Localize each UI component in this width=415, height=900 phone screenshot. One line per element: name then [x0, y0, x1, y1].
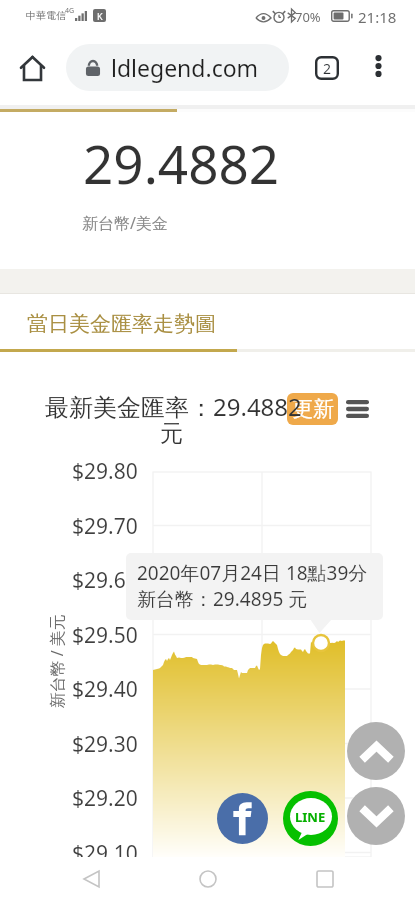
button[interactable]: Scroll to bottom: [347, 787, 405, 845]
staticText: ldlegend.com: [111, 52, 259, 83]
button[interactable]: ldlegend.com: [66, 44, 289, 91]
staticText: $29.80: [72, 457, 138, 486]
staticText: 元: [160, 419, 183, 448]
staticText: $29.60: [72, 566, 138, 595]
staticText: $29.70: [72, 512, 138, 541]
button[interactable]: Share on Facebook: [217, 793, 268, 844]
staticText: 更新: [292, 396, 334, 422]
staticText: 當日美金匯率走勢圖: [27, 311, 216, 337]
button[interactable]: More options: [358, 46, 398, 86]
staticText: $29.20: [72, 784, 138, 813]
staticText: $29.50: [72, 621, 138, 650]
staticText: 2020年07月24日 18點39分: [137, 560, 368, 586]
staticText: 29.4882: [83, 127, 280, 199]
button[interactable]: Home: [8, 44, 56, 92]
staticText: LINE: [295, 808, 326, 826]
staticText: 新台幣 / 美元: [45, 613, 67, 708]
staticText: 最新美金匯率：29.4882: [45, 390, 302, 423]
button[interactable]: Share on LINE: [283, 791, 338, 846]
staticText: 2: [323, 59, 332, 78]
button[interactable]: Back: [61, 857, 121, 900]
staticText: 新台幣/美金: [82, 212, 168, 234]
button[interactable]: Home: [178, 857, 238, 900]
staticText: K: [97, 10, 103, 22]
button[interactable]: Scroll to top: [347, 722, 405, 780]
staticText: $29.10: [72, 839, 138, 868]
staticText: 中華電信: [26, 9, 66, 22]
button[interactable]: Recents: [295, 857, 355, 900]
staticText: 70%: [295, 8, 321, 26]
staticText: 4G: [65, 6, 75, 16]
button[interactable]: 更新: [287, 393, 338, 425]
button[interactable]: Menu: [342, 394, 372, 424]
staticText: $29.40: [72, 675, 138, 704]
staticText: $29.30: [72, 730, 138, 759]
button[interactable]: Tabs: [305, 46, 349, 90]
staticText: 新台幣：29.4895 元: [137, 586, 308, 612]
staticText: 21:18: [358, 7, 397, 27]
button[interactable]: 當日美金匯率走勢圖: [0, 294, 237, 353]
